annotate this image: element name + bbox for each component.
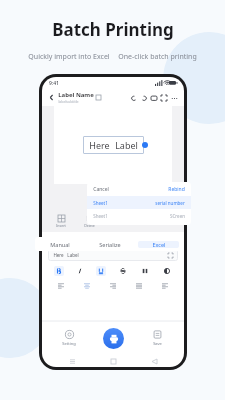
staticText: SCreen xyxy=(170,213,185,219)
button[interactable]: Format option xyxy=(162,266,172,276)
button[interactable]: Undo xyxy=(129,93,139,103)
button[interactable]: Rename xyxy=(96,95,101,100)
staticText: 9:41 xyxy=(49,80,59,87)
button[interactable]: More options xyxy=(169,93,179,103)
staticText: Sheet1 xyxy=(93,213,108,219)
button[interactable]: Format option xyxy=(160,281,170,291)
button[interactable]: Back xyxy=(47,93,56,102)
button[interactable]: Save xyxy=(149,93,159,103)
button[interactable]: Serialize xyxy=(89,241,130,248)
staticText: Here xyxy=(53,252,64,258)
button[interactable]: Manual xyxy=(39,241,81,248)
button[interactable]: Save xyxy=(144,330,170,346)
staticText: labelsubtitle xyxy=(58,99,79,104)
button[interactable]: Format option xyxy=(54,266,64,276)
button[interactable]: Format option xyxy=(56,281,66,291)
staticText: Label xyxy=(115,139,138,151)
staticText: Serialize xyxy=(99,241,121,248)
button[interactable]: Cancel xyxy=(93,186,109,193)
button[interactable]: Resize handle xyxy=(142,142,148,148)
staticText: Sheet1 xyxy=(93,200,108,206)
staticText: Insert xyxy=(56,223,66,228)
button[interactable]: Fit to screen xyxy=(159,93,169,103)
button[interactable]: Insert xyxy=(52,215,70,228)
staticText: Label Name xyxy=(58,91,94,99)
staticText: Excel xyxy=(152,241,166,248)
staticText: One-click batch printing xyxy=(118,52,197,62)
staticText: Label xyxy=(67,252,79,258)
button[interactable]: Here xyxy=(89,139,138,151)
button[interactable]: Format option xyxy=(96,266,106,276)
button[interactable]: Rebind xyxy=(168,186,185,193)
button[interactable]: Here xyxy=(53,249,173,261)
button[interactable]: Sheet1 xyxy=(93,196,185,209)
staticText: Batch Printing xyxy=(52,18,174,41)
staticText: Delete xyxy=(84,223,95,228)
button[interactable]: Setting xyxy=(56,330,82,346)
button[interactable]: Back xyxy=(150,357,158,365)
staticText: serial number xyxy=(155,200,185,206)
button[interactable]: Redo xyxy=(139,93,149,103)
button[interactable]: Print xyxy=(103,328,124,349)
button[interactable]: Format option xyxy=(134,281,144,291)
button[interactable]: Format option xyxy=(75,266,85,276)
staticText: Cancel xyxy=(93,186,109,193)
button[interactable]: Home xyxy=(109,357,117,365)
staticText: Save xyxy=(153,341,162,346)
staticText: Rebind xyxy=(168,186,185,193)
button[interactable]: Delete xyxy=(80,215,98,228)
button[interactable]: Sheet1 xyxy=(93,209,185,222)
button[interactable]: Excel xyxy=(138,241,179,248)
button[interactable]: Format option xyxy=(82,281,92,291)
staticText: Quickly import into Excel xyxy=(28,52,110,62)
staticText: Manual xyxy=(50,241,70,248)
button[interactable]: Format option xyxy=(118,266,128,276)
button[interactable]: Format option xyxy=(108,281,118,291)
staticText: Setting xyxy=(62,341,76,346)
staticText: Here xyxy=(89,139,110,151)
button[interactable]: Format option xyxy=(140,266,150,276)
button[interactable]: Recents xyxy=(68,357,76,365)
